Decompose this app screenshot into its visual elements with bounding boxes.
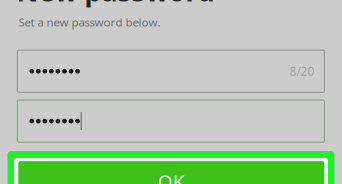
button[interactable]: New password: [17, 50, 324, 92]
button[interactable]: Confirm password: [17, 100, 324, 142]
staticText: New password: [17, 0, 215, 9]
staticText: OK: [158, 168, 185, 184]
staticText: Set a new password below.: [19, 14, 161, 30]
staticText: 8/20: [289, 63, 314, 79]
button[interactable]: OK: [7, 151, 334, 184]
